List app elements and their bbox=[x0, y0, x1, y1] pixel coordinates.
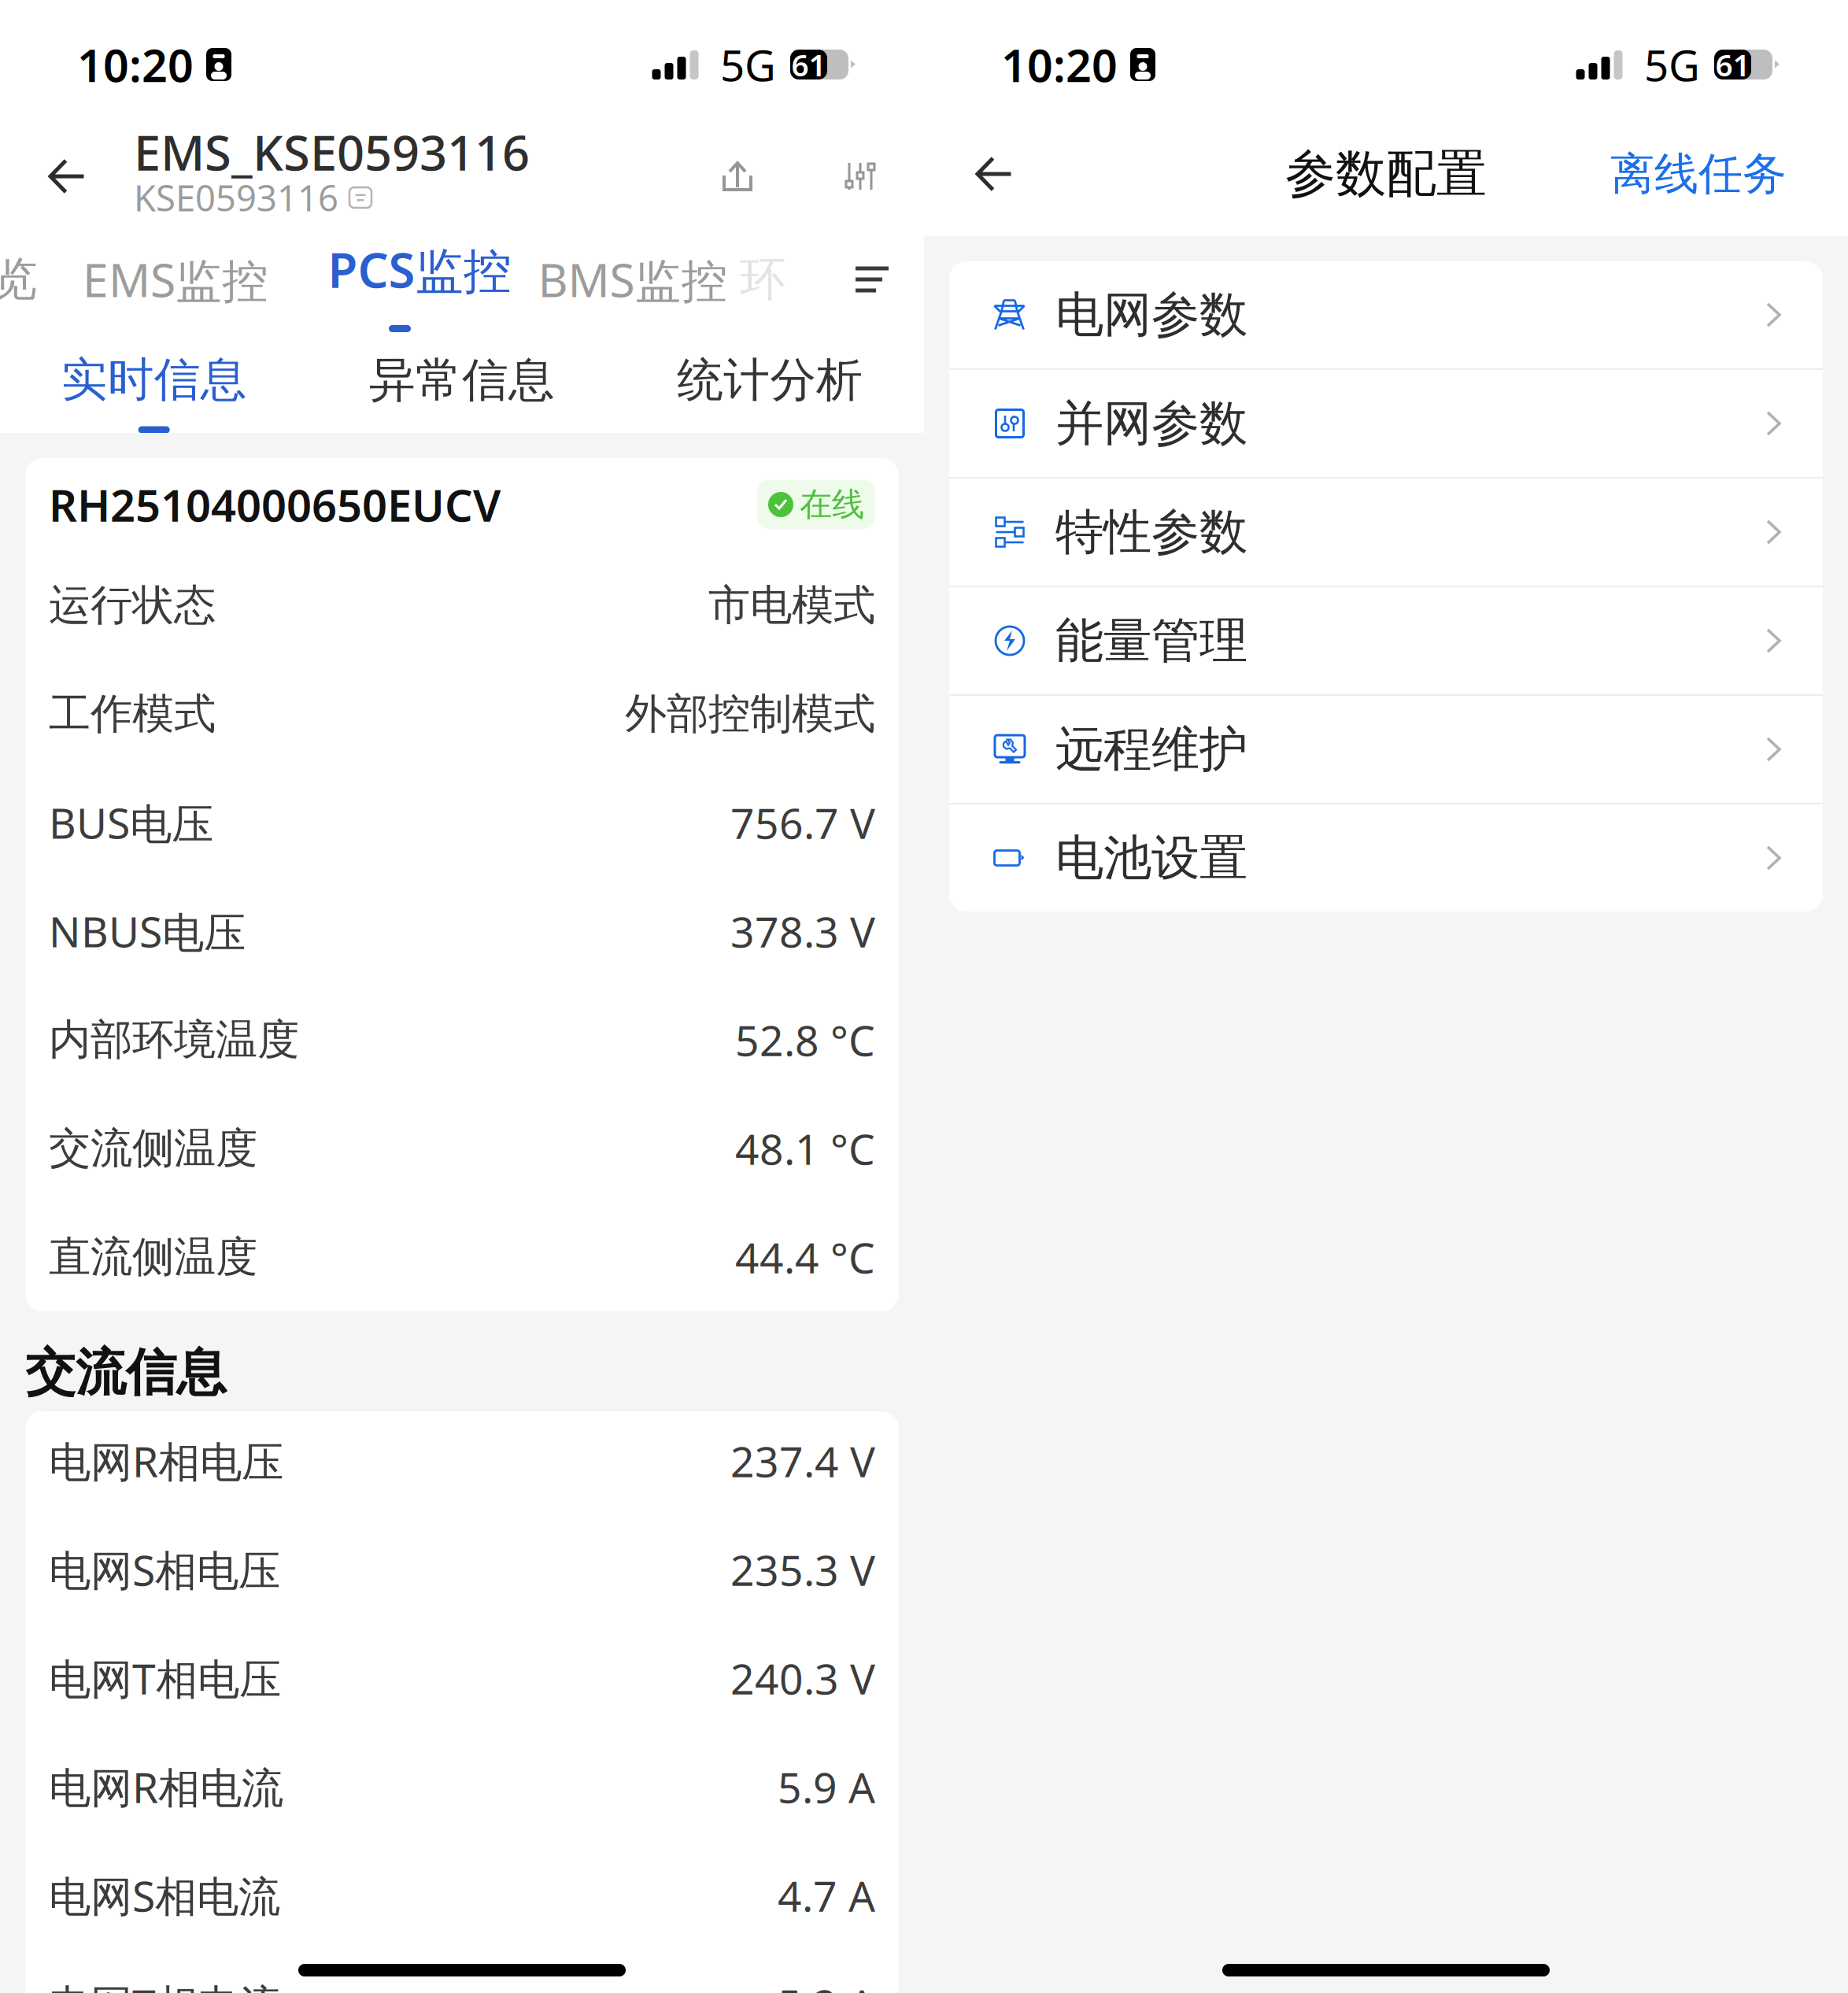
button[interactable]: More tabs bbox=[834, 224, 910, 335]
staticText: 远程维护 bbox=[1055, 720, 1247, 779]
staticText: 能量管理 bbox=[1055, 611, 1247, 670]
button[interactable]: BMS监控 bbox=[526, 224, 740, 335]
button[interactable]: 电池设置 bbox=[949, 804, 1823, 911]
staticText: 直流侧温度 bbox=[49, 1231, 257, 1283]
staticText: 实时信息 bbox=[61, 351, 247, 408]
staticText: 378.3 V bbox=[730, 903, 875, 959]
staticText: 44.4 °C bbox=[735, 1229, 875, 1285]
button[interactable]: 能量管理 bbox=[949, 587, 1823, 694]
staticText: 电网R相电流 bbox=[49, 1759, 283, 1815]
staticText: 内部环境温度 bbox=[49, 1014, 299, 1066]
staticText: 运行状态 bbox=[49, 579, 216, 631]
button[interactable]: 异常信息 bbox=[308, 342, 616, 433]
staticText: 离线任务 bbox=[1610, 147, 1787, 201]
button[interactable]: 环 bbox=[740, 224, 811, 335]
staticText: EMS监控 bbox=[83, 249, 268, 310]
staticText: BMS监控 bbox=[538, 249, 728, 310]
staticText: 5G bbox=[1644, 36, 1700, 93]
staticText: 61 bbox=[791, 44, 826, 85]
staticText: 52.8 °C bbox=[735, 1012, 875, 1068]
staticText: 环 bbox=[740, 251, 786, 308]
button[interactable]: Back bbox=[0, 129, 134, 224]
staticText: 市电模式 bbox=[708, 579, 875, 631]
staticText: 外部控制模式 bbox=[625, 688, 875, 740]
staticText: 61 bbox=[1715, 44, 1750, 85]
staticText: 电网S相电压 bbox=[49, 1542, 280, 1597]
staticText: 10:20 bbox=[1001, 35, 1118, 94]
button[interactable]: Settings bbox=[812, 129, 908, 224]
button[interactable]: 特性参数 bbox=[949, 479, 1823, 586]
button[interactable]: 离线任务 bbox=[1610, 129, 1787, 236]
staticText: 电网T相电流 bbox=[49, 1976, 281, 1993]
staticText: 交流信息 bbox=[25, 1342, 227, 1404]
staticText: 237.4 V bbox=[730, 1433, 875, 1489]
staticText: 电网参数 bbox=[1055, 285, 1247, 344]
staticText: 10:20 bbox=[77, 35, 194, 94]
staticText: 特性参数 bbox=[1055, 502, 1247, 562]
staticText: 电网T相电压 bbox=[49, 1650, 281, 1706]
staticText: NBUS电压 bbox=[49, 903, 246, 959]
staticText: BUS电压 bbox=[49, 795, 213, 851]
staticText: 240.3 V bbox=[730, 1650, 875, 1706]
staticText: EMS_KSE0593116 bbox=[134, 120, 530, 184]
staticText: PCS监控 bbox=[328, 237, 511, 301]
button[interactable]: 实时信息 bbox=[0, 342, 308, 433]
staticText: 电网S相电流 bbox=[49, 1868, 280, 1923]
staticText: 在线 bbox=[800, 485, 864, 525]
button[interactable]: 统计分析 bbox=[616, 342, 924, 433]
staticText: 交流侧温度 bbox=[49, 1123, 257, 1174]
button[interactable]: 电网参数 bbox=[949, 261, 1823, 368]
button[interactable]: PCS监控 bbox=[313, 224, 526, 335]
staticText: 5.9 A bbox=[778, 1759, 875, 1815]
staticText: RH25104000650EUCV bbox=[49, 475, 501, 534]
button[interactable]: Share bbox=[663, 129, 812, 224]
staticText: 5.2 A bbox=[778, 1976, 875, 1993]
button[interactable]: 远程维护 bbox=[949, 696, 1823, 803]
button[interactable]: EMS监控 bbox=[38, 224, 313, 335]
staticText: KSE0593116 bbox=[134, 174, 338, 221]
button[interactable]: 并网参数 bbox=[949, 370, 1823, 477]
staticText: 并网参数 bbox=[1055, 394, 1247, 453]
staticText: 参数配置 bbox=[1285, 143, 1487, 205]
staticText: 工作模式 bbox=[49, 688, 216, 740]
staticText: 48.1 °C bbox=[735, 1121, 875, 1176]
staticText: 235.3 V bbox=[730, 1542, 875, 1597]
staticText: 统计分析 bbox=[677, 352, 863, 409]
staticText: 览 bbox=[0, 251, 38, 308]
staticText: 5G bbox=[720, 36, 776, 93]
staticText: 电池设置 bbox=[1055, 828, 1247, 888]
button[interactable]: Back bbox=[924, 129, 1064, 236]
staticText: 4.7 A bbox=[778, 1868, 875, 1923]
staticText: 异常信息 bbox=[369, 352, 555, 409]
staticText: 756.7 V bbox=[730, 795, 875, 850]
button[interactable]: 览 bbox=[0, 224, 38, 335]
staticText: 电网R相电压 bbox=[49, 1433, 283, 1489]
